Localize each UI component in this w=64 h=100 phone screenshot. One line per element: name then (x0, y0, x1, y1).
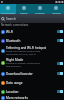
button[interactable]: Flight Mode (0, 57, 64, 69)
button[interactable]: Location (0, 87, 64, 96)
staticText: Location (6, 90, 19, 94)
staticText: General (52, 11, 61, 14)
staticText: Bluetooth (6, 39, 21, 43)
staticText: Wi-Fi (6, 30, 14, 34)
button[interactable]: Data usage (0, 78, 64, 87)
button[interactable]: Toggle switch (57, 30, 63, 33)
staticText: Connections (1, 11, 15, 14)
staticText: Data usage (6, 81, 23, 85)
button[interactable]: Wi-Fi (0, 27, 64, 36)
staticText: Controls (35, 11, 45, 14)
staticText: Device (20, 11, 28, 14)
button[interactable]: Bluetooth (0, 36, 64, 45)
staticText: Download booster (6, 72, 33, 76)
button[interactable]: General (48, 4, 64, 14)
button[interactable]: More networks (0, 96, 64, 100)
button[interactable]: Search (0, 14, 64, 23)
button[interactable]: Device (16, 4, 32, 14)
staticText: Flight Mode (6, 58, 24, 62)
staticText: More networks (6, 96, 28, 100)
button[interactable]: Toggle switch (57, 90, 63, 93)
staticText: Search (6, 17, 16, 21)
staticText: Share your device's mobile data connecti… (6, 50, 41, 56)
button[interactable]: Download booster (0, 69, 64, 78)
button[interactable]: Toggle switch (57, 39, 63, 42)
staticText: Disable all wireless connections and fun… (6, 62, 40, 68)
button[interactable]: Tethering and Wi-Fi hotspot (0, 45, 64, 57)
button[interactable]: Toggle switch (57, 72, 63, 75)
button[interactable]: Controls (32, 4, 48, 14)
button[interactable]: Toggle switch (57, 62, 63, 65)
staticText: Tethering and Wi-Fi hotspot (6, 46, 47, 50)
button[interactable]: Connections (0, 4, 16, 14)
staticText: Network connections (1, 23, 29, 27)
